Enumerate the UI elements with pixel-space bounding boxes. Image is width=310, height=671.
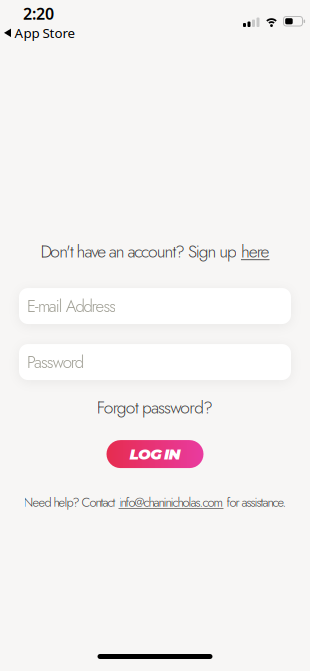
staticText: App Store <box>14 24 75 42</box>
textField[interactable]: E-mail Address <box>27 294 291 318</box>
staticText: info@chaninicholas.com <box>118 493 223 512</box>
staticText: 2:20 <box>23 3 54 24</box>
secureTextField[interactable]: Password <box>27 350 291 374</box>
staticText: Need help? Contact <box>23 493 118 512</box>
staticText: E-mail Address <box>27 294 116 318</box>
staticText: Password <box>27 350 84 374</box>
staticText: LOG IN <box>129 445 180 463</box>
button[interactable]: Back to App Store <box>4 24 75 42</box>
staticText: Forgot password? <box>97 395 213 420</box>
button[interactable]: info@chaninicholas.com <box>118 493 223 512</box>
staticText: for assistance. <box>223 493 286 512</box>
staticText: Don't have an account? Sign up <box>40 239 241 264</box>
button[interactable]: Forgot password? <box>97 395 213 420</box>
button[interactable]: here <box>241 239 269 264</box>
staticText: here <box>241 239 269 264</box>
button[interactable]: LOG IN <box>106 440 203 468</box>
